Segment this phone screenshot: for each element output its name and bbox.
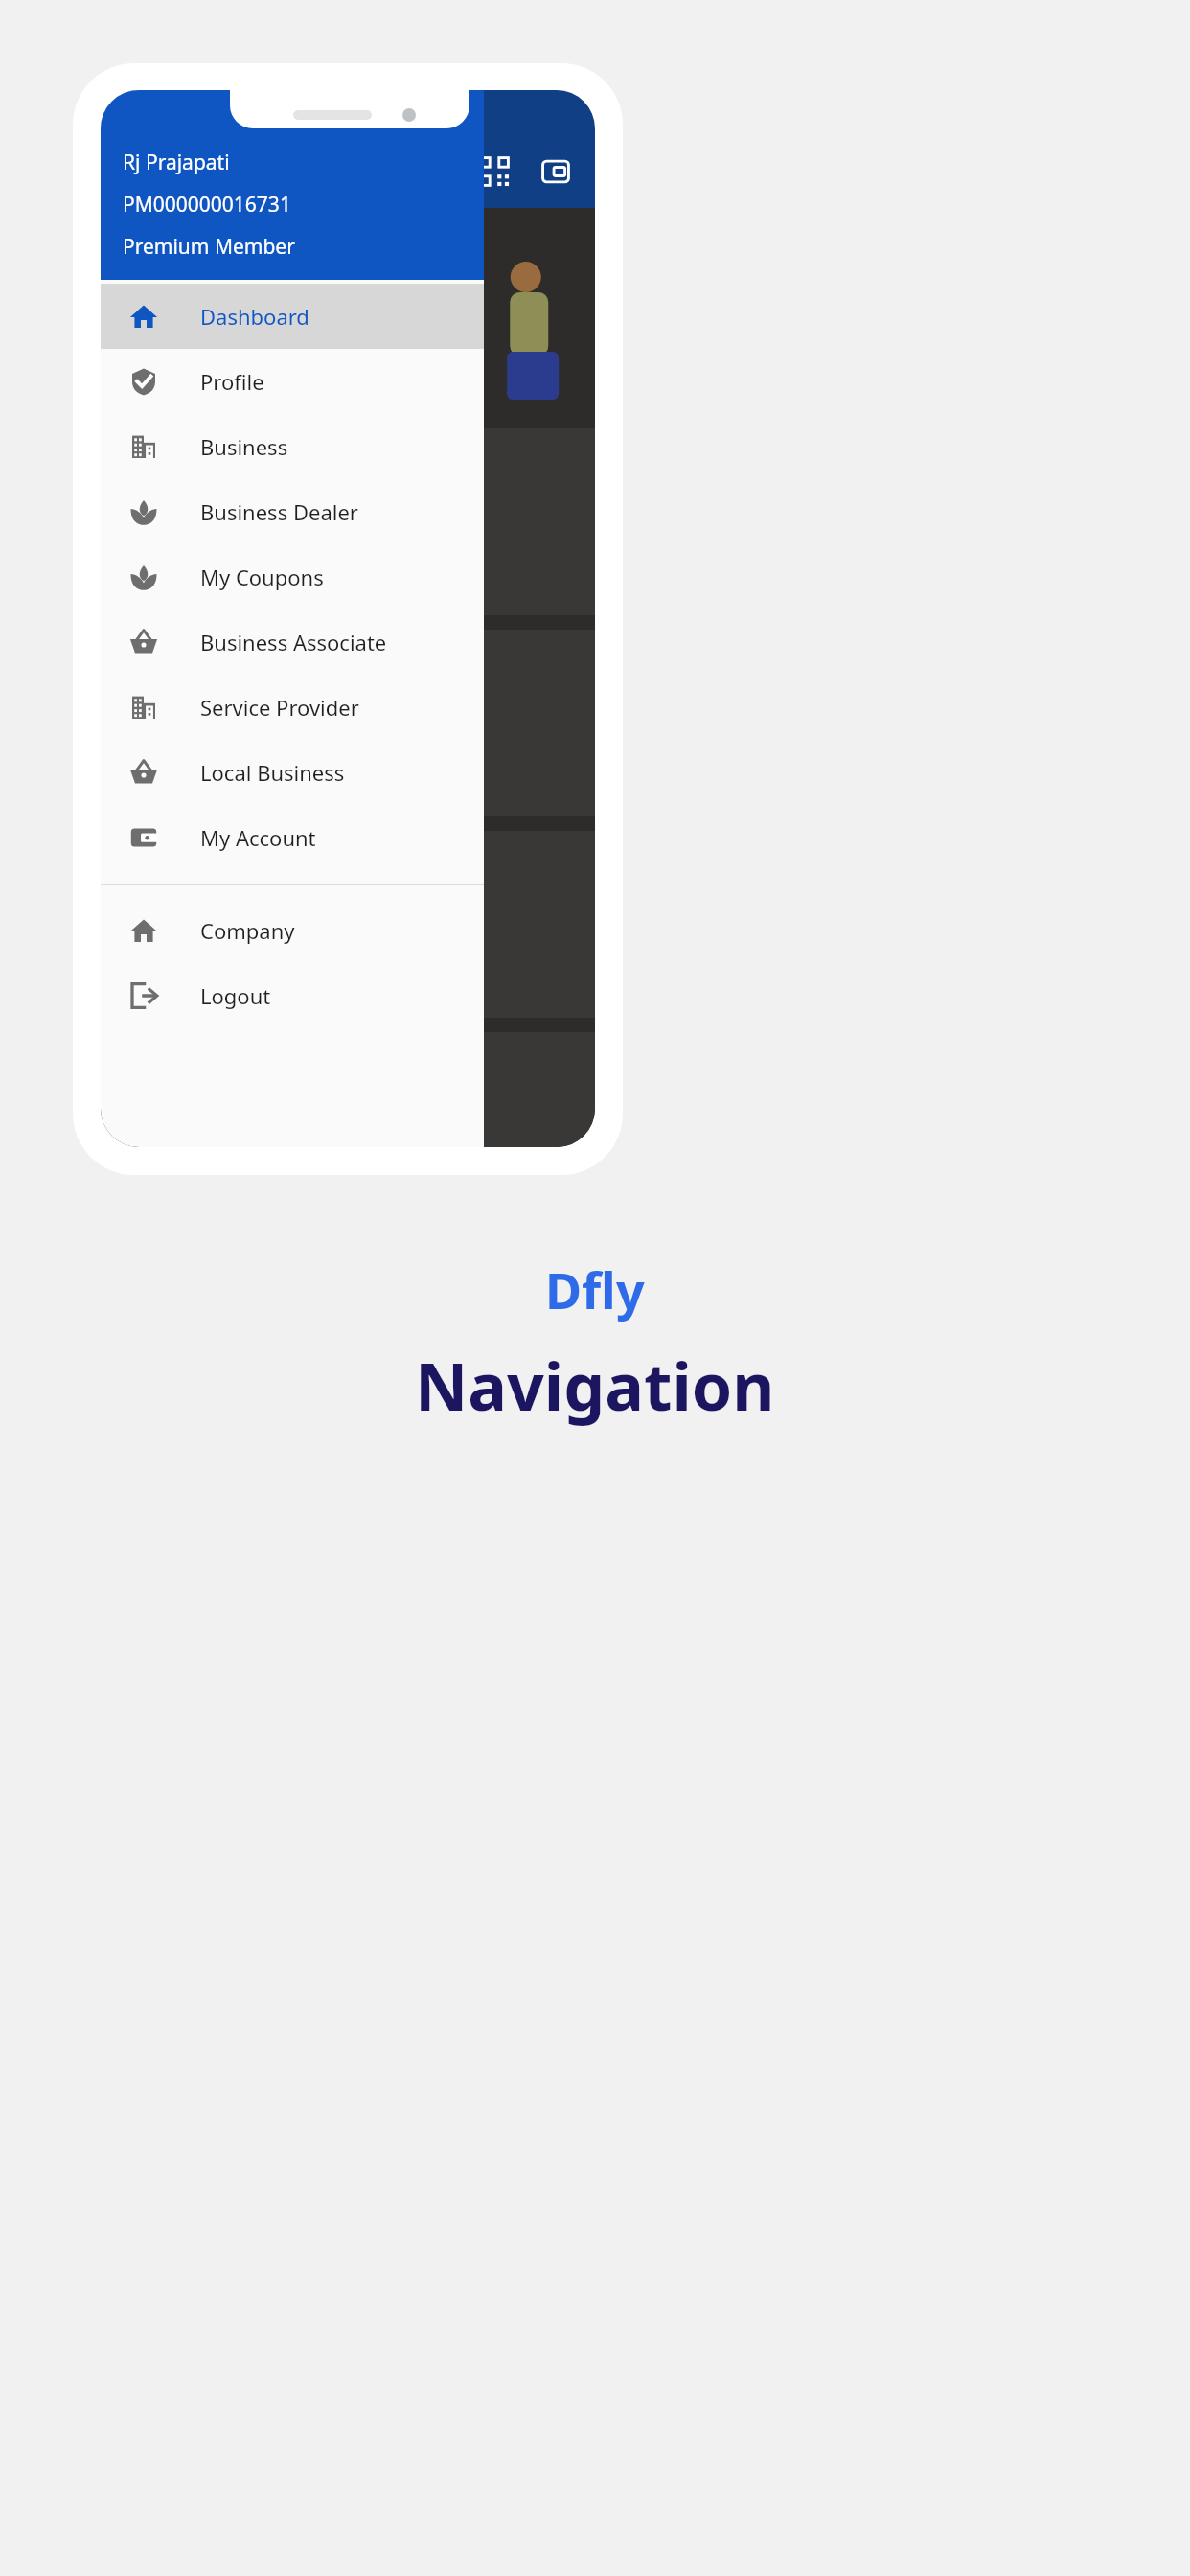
staticText: Dfly — [545, 1255, 645, 1323]
staticText: Business — [200, 432, 288, 461]
button[interactable]: My Coupons — [101, 544, 484, 609]
staticText: My Account — [200, 823, 316, 852]
button[interactable]: Business Associate — [101, 609, 484, 675]
staticText: My Coupons — [200, 563, 324, 591]
staticText: Business Associate — [200, 628, 387, 656]
button[interactable]: Company — [101, 898, 484, 963]
staticText: Premium Member — [123, 233, 295, 261]
staticText: Service Provider — [200, 693, 359, 722]
button[interactable]: Local Business — [101, 740, 484, 805]
button[interactable]: Profile — [101, 349, 484, 414]
button[interactable]: Scan QR code — [469, 146, 520, 197]
staticText: Profile — [200, 367, 264, 396]
button[interactable]: Wallet — [530, 146, 582, 197]
button[interactable]: Service Provider — [101, 675, 484, 740]
button[interactable]: Logout — [101, 963, 484, 1028]
staticText: Company — [200, 916, 295, 945]
staticText: Business Dealer — [200, 497, 358, 526]
button[interactable]: Business — [101, 414, 484, 479]
staticText: Navigation — [415, 1341, 775, 1430]
button[interactable]: Business Dealer — [101, 479, 484, 544]
staticText: Logout — [200, 981, 271, 1010]
button[interactable]: My Account — [101, 805, 484, 870]
button[interactable]: Dashboard — [101, 284, 484, 349]
staticText: Rj Prajapati — [123, 149, 230, 176]
staticText: PM000000016731 — [123, 191, 291, 218]
staticText: Local Business — [200, 758, 345, 787]
staticText: Dashboard — [200, 302, 309, 331]
